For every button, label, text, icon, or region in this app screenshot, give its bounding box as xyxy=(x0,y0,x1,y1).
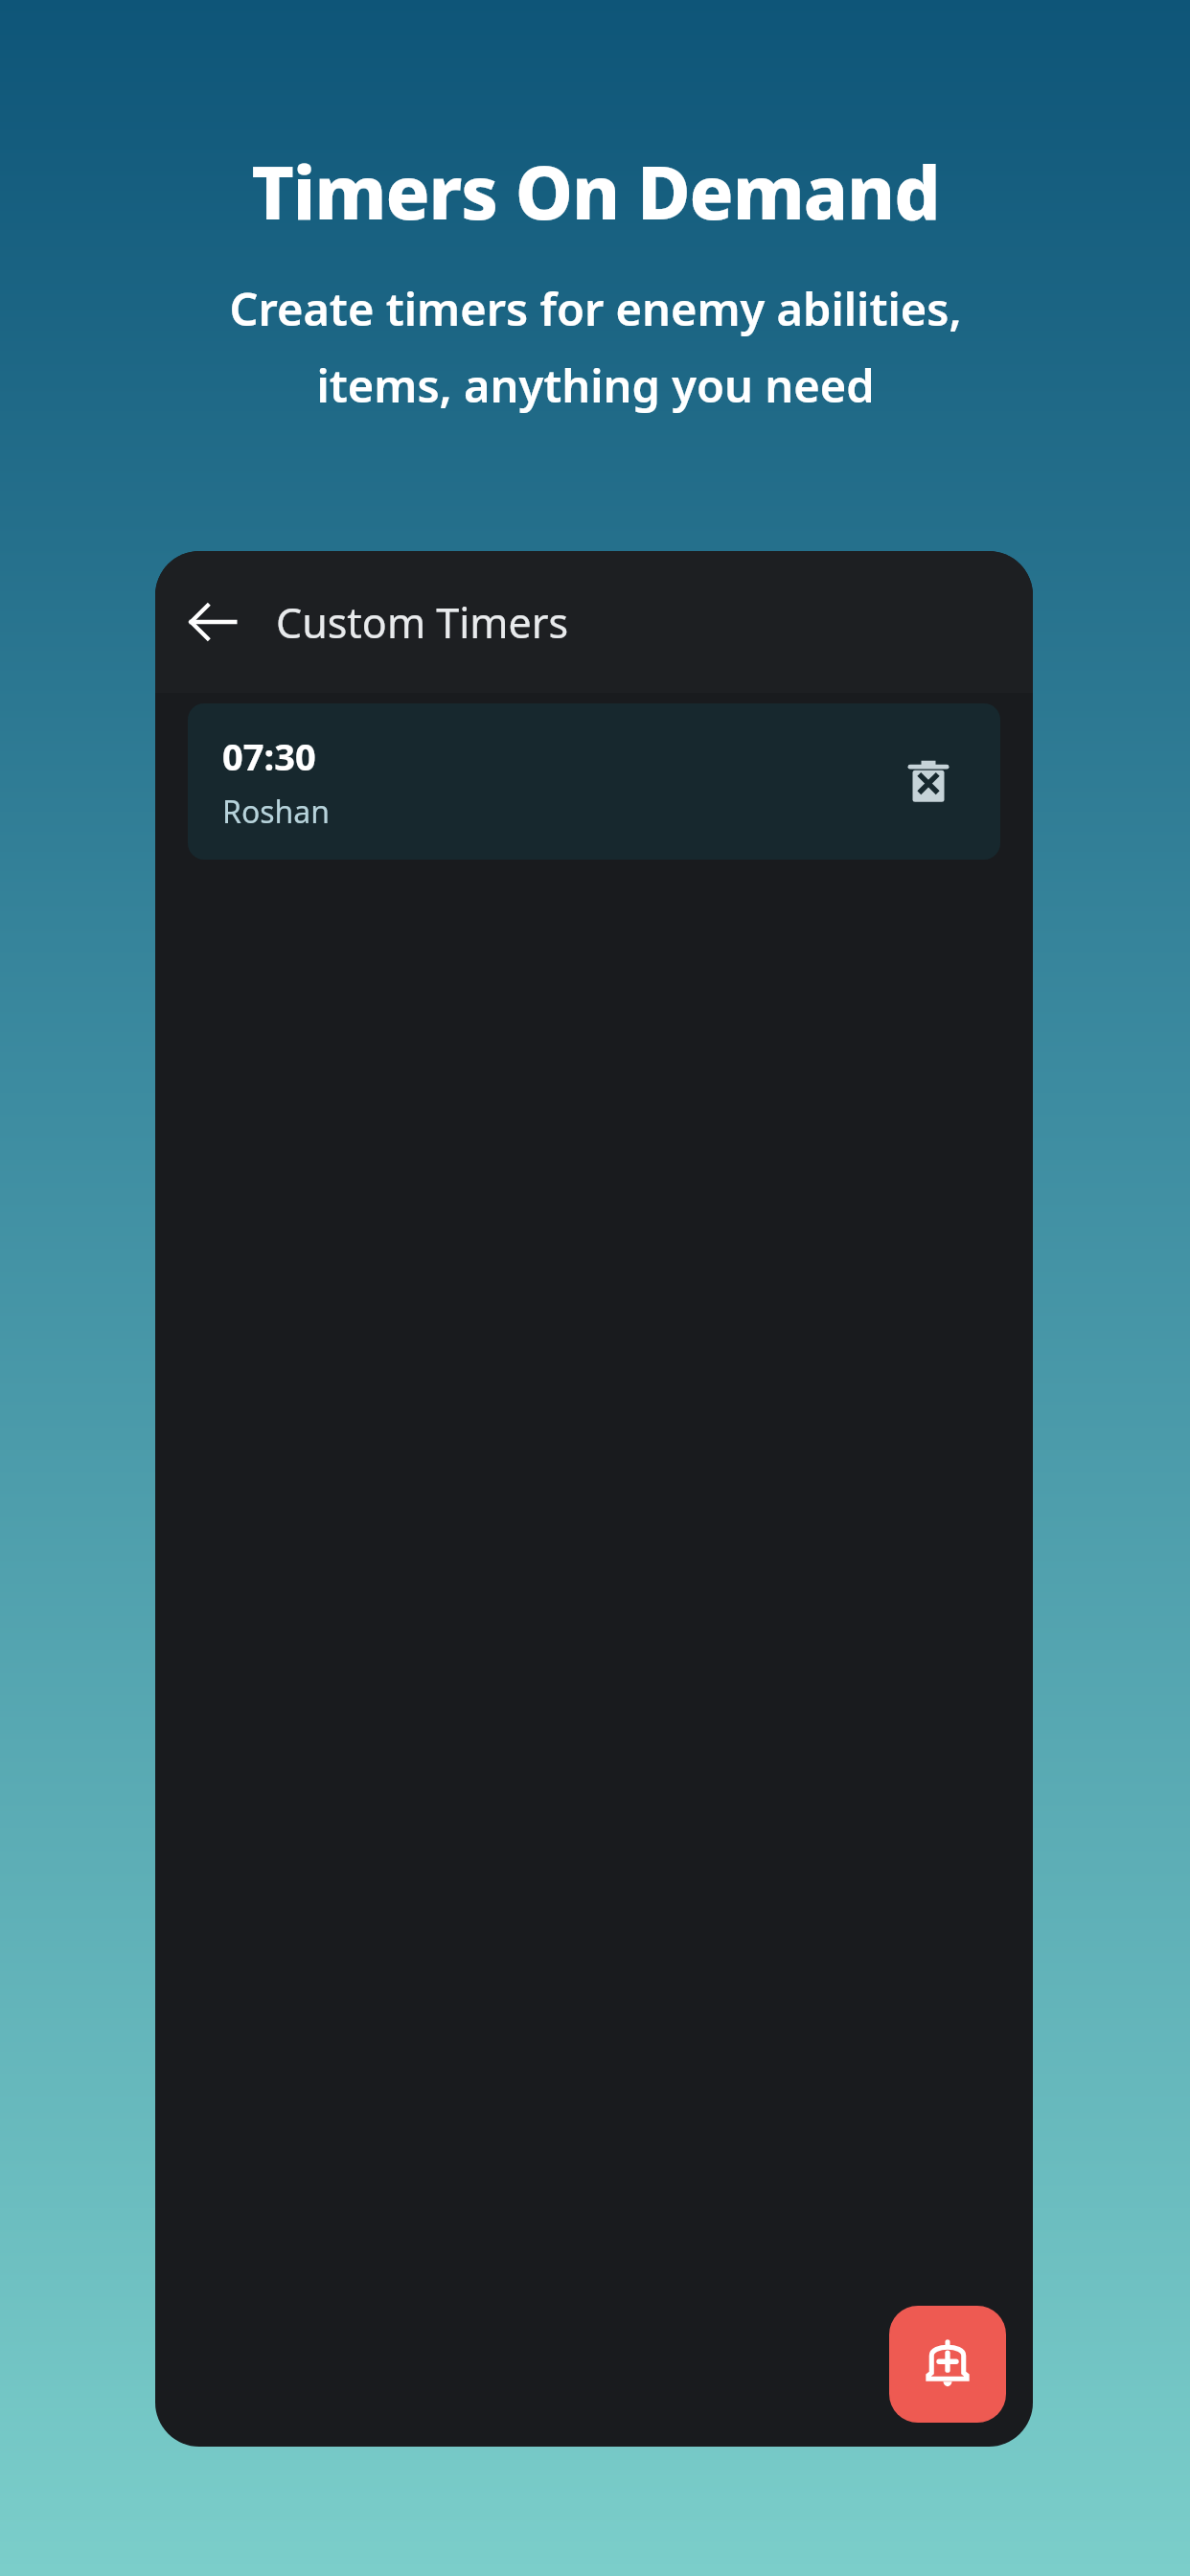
staticText: Custom Timers xyxy=(276,594,569,651)
button[interactable]: 07:30 xyxy=(188,703,1000,860)
button[interactable]: Back xyxy=(172,582,253,662)
staticText: 07:30 xyxy=(222,731,316,781)
staticText: Timers On Demand xyxy=(251,142,940,241)
button[interactable]: Add timer xyxy=(889,2306,1006,2423)
staticText: Create timers for enemy abilities, items… xyxy=(229,278,962,416)
button[interactable]: Delete timer xyxy=(889,743,968,821)
staticText: Roshan xyxy=(222,791,331,833)
